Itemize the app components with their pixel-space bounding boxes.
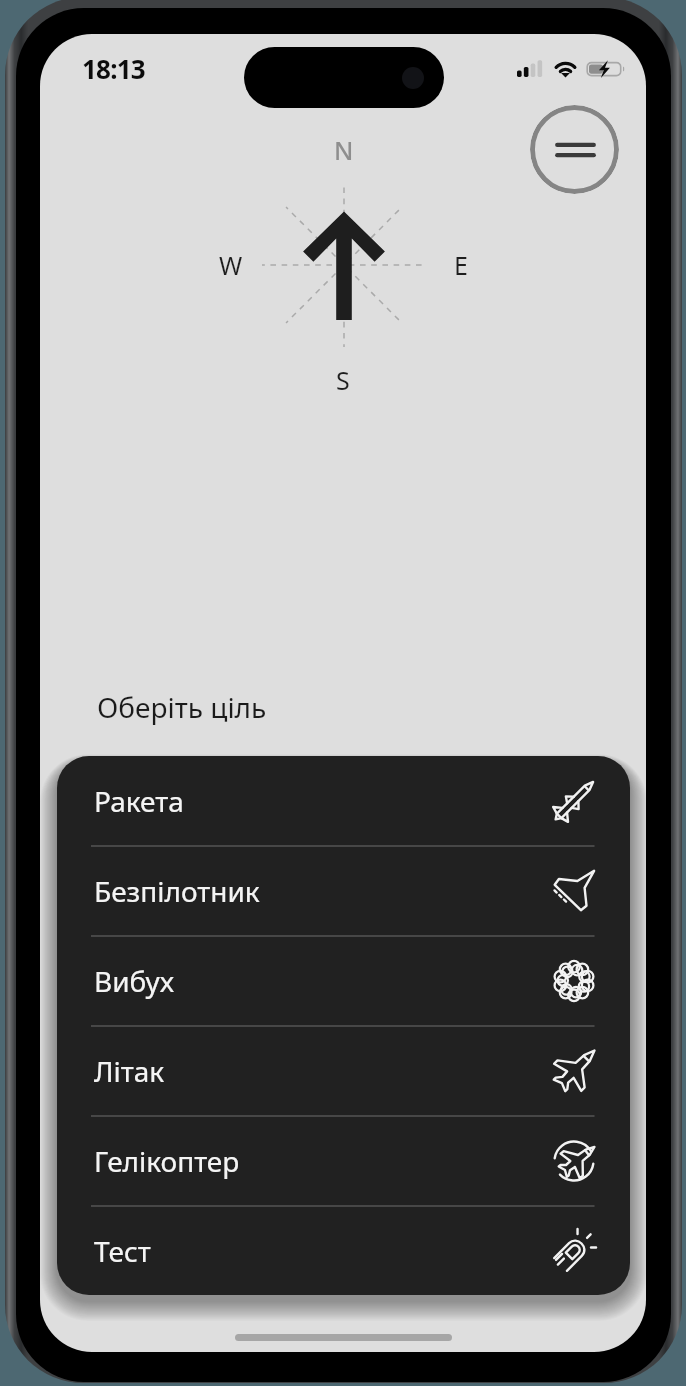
staticText: Вибух [94, 962, 175, 1000]
staticText: 18:13 [82, 51, 145, 81]
staticText: E [454, 248, 468, 282]
button[interactable]: Гелікоптер [57, 1116, 630, 1206]
staticText: Тест [94, 1232, 151, 1270]
staticText: Оберіть ціль [97, 688, 267, 726]
button[interactable]: Ракета [57, 756, 630, 846]
staticText: Безпілотник [94, 872, 260, 910]
button[interactable]: Тест [57, 1206, 630, 1295]
staticText: S [336, 363, 350, 397]
button[interactable]: Літак [57, 1026, 630, 1116]
staticText: Гелікоптер [94, 1142, 240, 1180]
button[interactable]: Вибух [57, 936, 630, 1026]
staticText: Літак [94, 1052, 165, 1090]
button[interactable]: Menu [530, 105, 619, 194]
staticText: W [219, 248, 243, 282]
staticText: Ракета [94, 782, 184, 820]
button[interactable]: Безпілотник [57, 846, 630, 936]
staticText: N [334, 133, 354, 167]
